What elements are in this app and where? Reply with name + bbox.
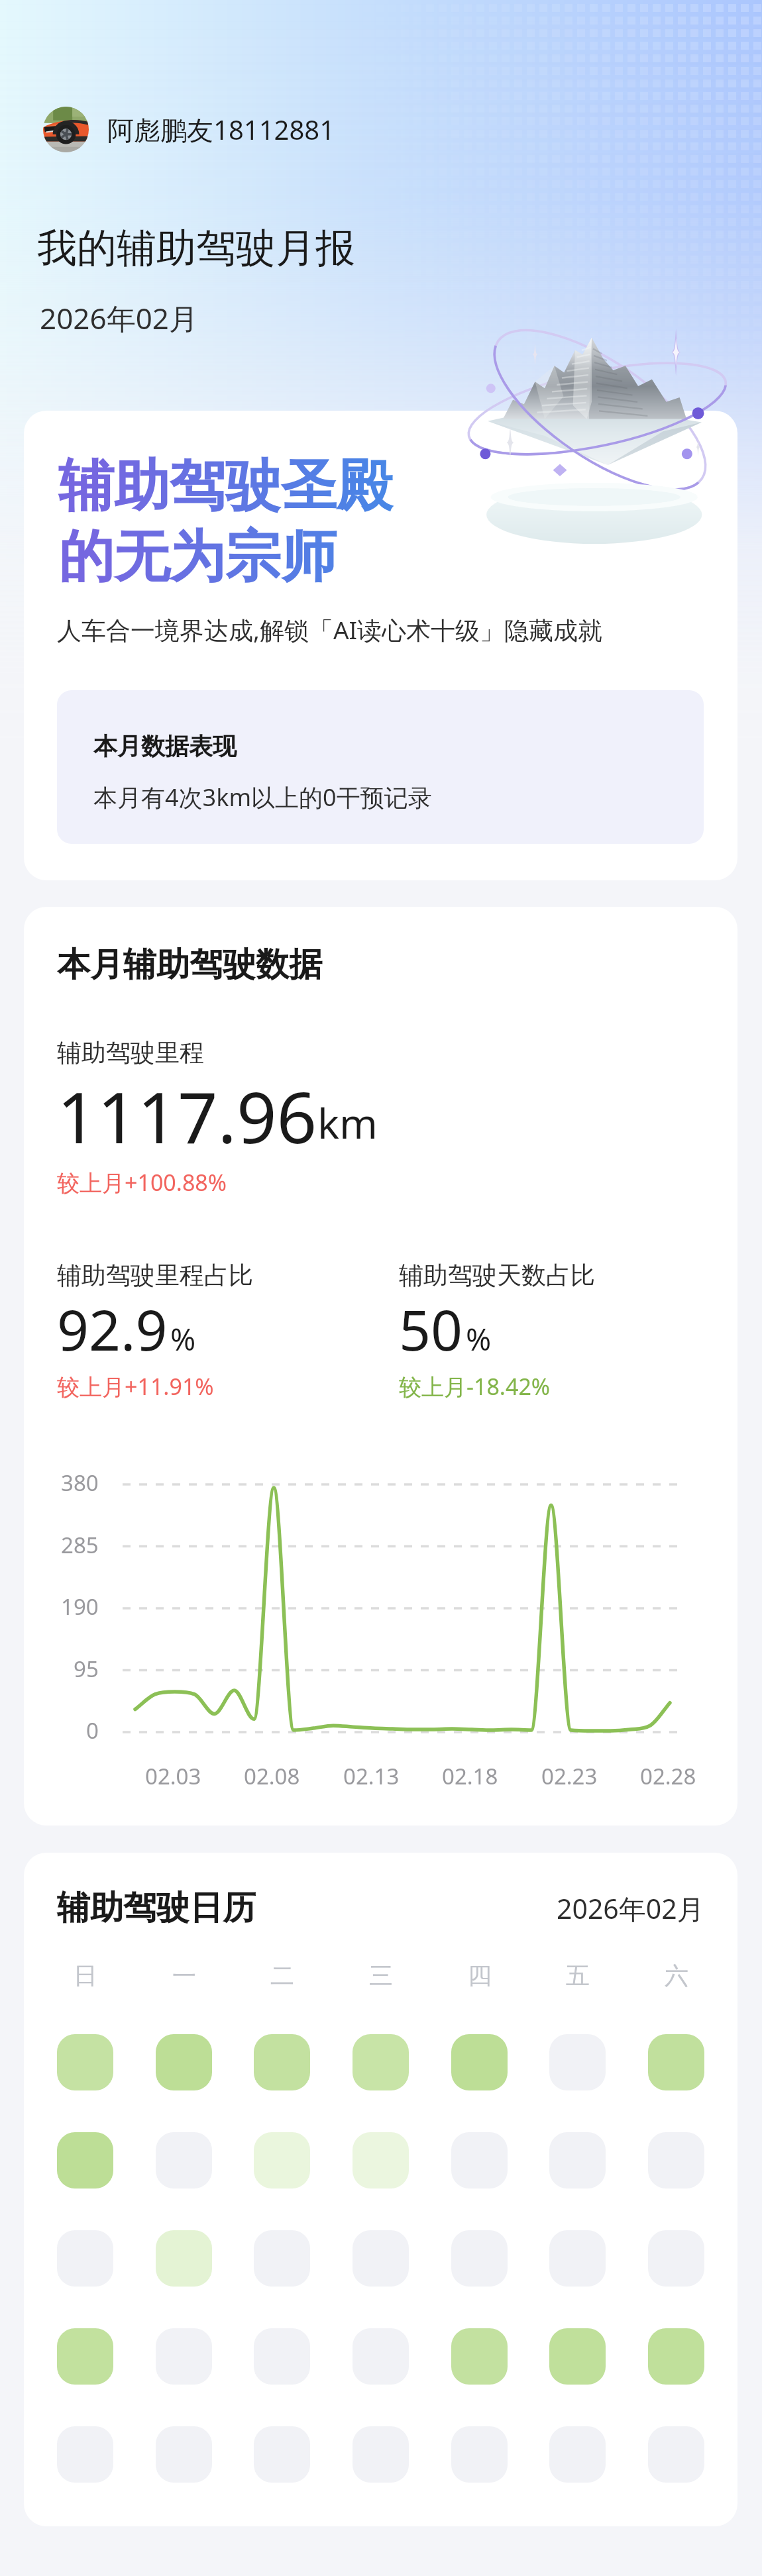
- staticText: 2026年02月: [40, 298, 199, 338]
- button[interactable]: 辅助驾驶日历: [24, 1853, 737, 2526]
- button[interactable]: [57, 2328, 113, 2385]
- staticText: 较上月+11.91%: [57, 1371, 214, 1402]
- staticText: 辅助驾驶里程占比: [57, 1260, 253, 1291]
- staticText: 较上月+100.88%: [57, 1167, 227, 1198]
- button[interactable]: [353, 2230, 409, 2287]
- button[interactable]: [648, 2328, 704, 2385]
- button[interactable]: [57, 2132, 113, 2189]
- button[interactable]: [57, 2426, 113, 2483]
- button[interactable]: [648, 2426, 704, 2483]
- staticText: %: [170, 1318, 196, 1360]
- staticText: 0: [86, 1716, 99, 1742]
- button[interactable]: [254, 2328, 310, 2385]
- button[interactable]: [156, 2132, 212, 2189]
- button[interactable]: [57, 2230, 113, 2287]
- staticText: 380: [61, 1468, 99, 1494]
- staticText: 四: [468, 1961, 492, 1990]
- button[interactable]: 辅助驾驶圣殿: [24, 411, 737, 880]
- staticText: 285: [61, 1530, 99, 1557]
- staticText: 本月有4次3km以上的0干预记录: [93, 781, 432, 813]
- button[interactable]: [549, 2132, 606, 2189]
- button[interactable]: [648, 2230, 704, 2287]
- staticText: 50: [399, 1291, 463, 1366]
- staticText: 三: [369, 1961, 393, 1990]
- button[interactable]: 阿彪鹏友18112881: [43, 107, 335, 152]
- button[interactable]: [353, 2426, 409, 2483]
- staticText: 五: [566, 1961, 590, 1990]
- button[interactable]: [156, 2230, 212, 2287]
- staticText: 阿彪鹏友18112881: [107, 111, 335, 148]
- button[interactable]: [648, 2132, 704, 2189]
- staticText: 二: [270, 1961, 294, 1990]
- button[interactable]: [451, 2328, 508, 2385]
- button[interactable]: [254, 2132, 310, 2189]
- staticText: 辅助驾驶圣殿: [58, 451, 392, 521]
- staticText: 六: [665, 1961, 688, 1990]
- staticText: 日: [74, 1961, 97, 1990]
- staticText: 02.28: [640, 1761, 696, 1791]
- button[interactable]: [254, 2230, 310, 2287]
- button[interactable]: [156, 2426, 212, 2483]
- staticText: km: [317, 1095, 378, 1151]
- button[interactable]: [156, 2328, 212, 2385]
- staticText: 92.9: [57, 1291, 168, 1366]
- staticText: 一: [172, 1961, 196, 1990]
- button[interactable]: [648, 2034, 704, 2090]
- button[interactable]: [451, 2426, 508, 2483]
- button[interactable]: [549, 2034, 606, 2090]
- staticText: 02.03: [145, 1761, 201, 1791]
- button[interactable]: 本月辅助驾驶数据: [24, 907, 737, 1826]
- staticText: 辅助驾驶日历: [57, 1887, 256, 1929]
- button[interactable]: [451, 2132, 508, 2189]
- staticText: %: [466, 1318, 492, 1360]
- button[interactable]: [549, 2230, 606, 2287]
- staticText: 02.18: [442, 1761, 498, 1791]
- staticText: 本月数据表现: [93, 731, 237, 761]
- button[interactable]: [451, 2230, 508, 2287]
- staticText: 02.23: [541, 1761, 598, 1791]
- button[interactable]: [451, 2034, 508, 2090]
- staticText: 的无为宗师: [58, 522, 337, 592]
- staticText: 辅助驾驶天数占比: [399, 1260, 595, 1291]
- staticText: 02.13: [343, 1761, 400, 1791]
- button[interactable]: [549, 2426, 606, 2483]
- button[interactable]: [254, 2034, 310, 2090]
- staticText: 较上月-18.42%: [399, 1371, 551, 1402]
- staticText: 本月辅助驾驶数据: [57, 944, 322, 986]
- button[interactable]: [353, 2132, 409, 2189]
- staticText: 2026年02月: [557, 1890, 704, 1927]
- button[interactable]: [57, 2034, 113, 2090]
- button[interactable]: [353, 2328, 409, 2385]
- staticText: 95: [74, 1654, 99, 1680]
- staticText: 190: [61, 1592, 99, 1618]
- staticText: 人车合一境界达成,解锁「AI读心术十级」隐藏成就: [57, 613, 603, 646]
- staticText: 我的辅助驾驶月报: [37, 223, 355, 274]
- staticText: 1117.96: [57, 1068, 317, 1164]
- button[interactable]: [353, 2034, 409, 2090]
- button[interactable]: [254, 2426, 310, 2483]
- staticText: 02.08: [244, 1761, 300, 1791]
- button[interactable]: [156, 2034, 212, 2090]
- staticText: 辅助驾驶里程: [57, 1037, 204, 1068]
- button[interactable]: [549, 2328, 606, 2385]
